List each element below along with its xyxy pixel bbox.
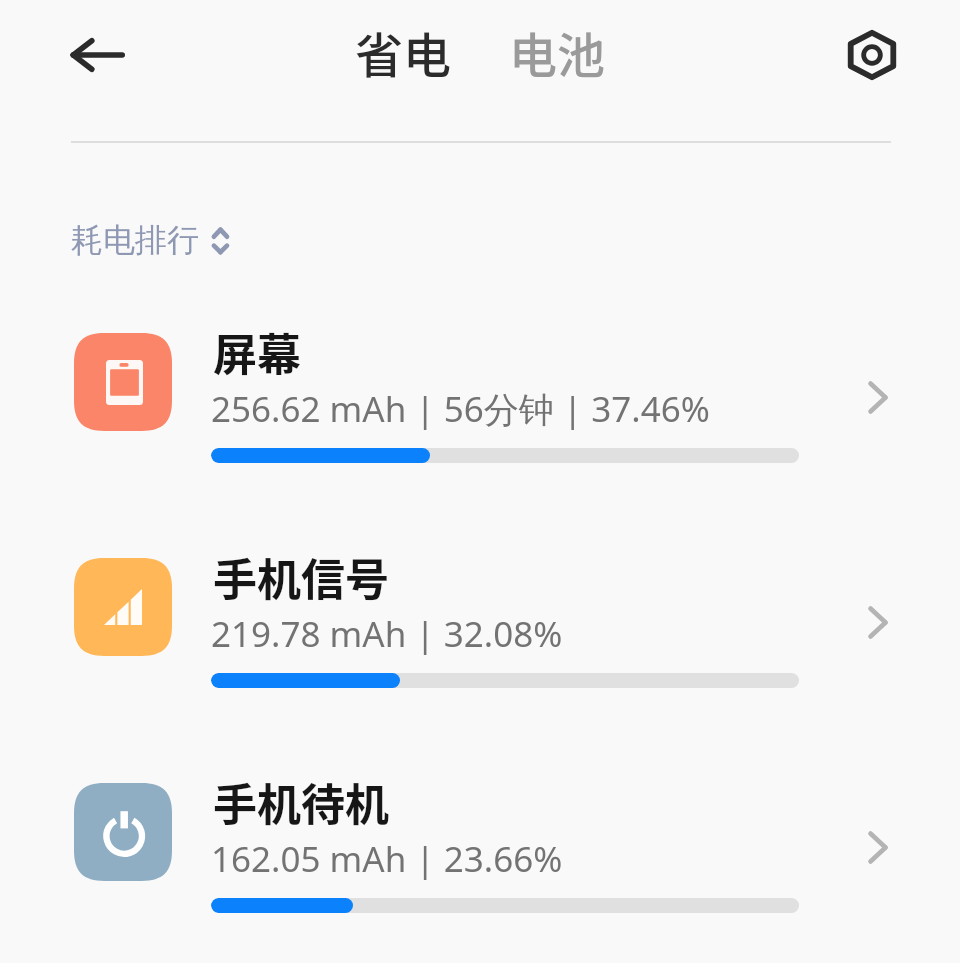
button[interactable]: 省电 [355,17,452,87]
staticText: 手机信号 [213,545,389,609]
button[interactable]: 屏幕 [0,307,960,517]
staticText: 162.05 mAh | 23.66% [211,835,563,883]
other: Details [848,592,908,652]
staticText: 256.62 mAh | 56分钟 | 37.46% [211,385,710,433]
staticText: 手机待机 [213,770,389,834]
staticText: 屏幕 [213,320,301,384]
button[interactable]: 手机待机 [0,757,960,963]
button[interactable]: 耗电排行 [71,220,199,260]
staticText: 219.78 mAh | 32.08% [211,610,563,658]
staticText: 耗电排行 [71,220,199,260]
button[interactable]: Settings [838,21,906,89]
other: Details [848,367,908,427]
staticText: 省电 [355,17,452,87]
button[interactable]: 电池 [509,17,606,87]
other: Details [848,817,908,877]
button[interactable]: Back [58,16,136,94]
staticText: 电池 [509,17,606,87]
button[interactable]: 手机信号 [0,532,960,742]
